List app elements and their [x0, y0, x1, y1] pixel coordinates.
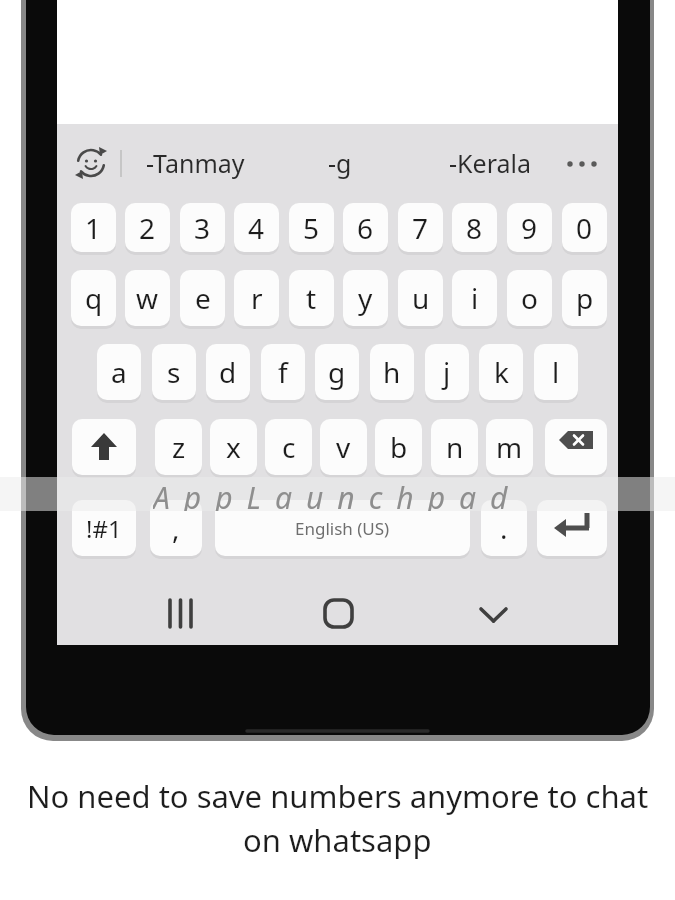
staticText: t	[306, 279, 317, 317]
staticText: on whatsapp	[243, 819, 432, 861]
button[interactable]: r	[234, 270, 279, 326]
staticText: p	[576, 279, 594, 317]
staticText: d	[219, 353, 237, 391]
staticText: i	[471, 279, 479, 317]
staticText: o	[521, 279, 538, 317]
staticText: !#1	[86, 512, 122, 545]
staticText: 8	[466, 209, 483, 247]
staticText: 6	[357, 209, 374, 247]
button[interactable]	[545, 419, 607, 475]
staticText: No need to save numbers anymore to chat	[27, 775, 649, 817]
staticText: m	[496, 428, 523, 466]
button[interactable]: English (US)	[215, 500, 470, 556]
button[interactable]: 9	[507, 203, 552, 252]
button[interactable]: 5	[289, 203, 334, 252]
button[interactable]: n	[431, 419, 478, 475]
staticText: r	[251, 279, 263, 317]
button[interactable]: 1	[71, 203, 116, 252]
button[interactable]: y	[343, 270, 388, 326]
staticText: a	[111, 353, 127, 391]
staticText: x	[226, 428, 241, 466]
staticText: -Tanmay	[146, 146, 245, 180]
button[interactable]: !#1	[72, 500, 136, 556]
staticText: 4	[248, 209, 265, 247]
staticText: AppLaunchpad	[153, 477, 522, 511]
staticText: l	[552, 353, 560, 391]
button[interactable]: 8	[452, 203, 497, 252]
button[interactable]: ,	[150, 500, 202, 556]
button[interactable]: l	[534, 344, 578, 400]
staticText: 2	[139, 209, 156, 247]
button[interactable]: p	[562, 270, 607, 326]
button[interactable]: 0	[562, 203, 607, 252]
staticText: u	[412, 279, 430, 317]
button[interactable]: w	[125, 270, 170, 326]
staticText: w	[136, 279, 159, 317]
staticText: c	[282, 428, 296, 466]
button[interactable]: h	[370, 344, 414, 400]
button[interactable]: s	[152, 344, 196, 400]
button[interactable]: q	[71, 270, 116, 326]
staticText: z	[172, 428, 186, 466]
staticText: 3	[194, 209, 211, 247]
staticText: 9	[521, 209, 538, 247]
button[interactable]: g	[315, 344, 359, 400]
staticText: 0	[576, 209, 593, 247]
button[interactable]: v	[320, 419, 367, 475]
staticText: b	[390, 428, 408, 466]
staticText: j	[443, 353, 451, 391]
button[interactable]: 7	[398, 203, 443, 252]
staticText: 7	[412, 209, 429, 247]
button[interactable]: u	[398, 270, 443, 326]
staticText: y	[358, 279, 373, 317]
button[interactable]: b	[375, 419, 422, 475]
button[interactable]: 4	[234, 203, 279, 252]
button[interactable]: 2	[125, 203, 170, 252]
staticText: English (US)	[295, 517, 390, 540]
button[interactable]: j	[425, 344, 469, 400]
button[interactable]: x	[210, 419, 257, 475]
staticText: n	[446, 428, 464, 466]
button[interactable]: d	[206, 344, 250, 400]
staticText: v	[336, 428, 351, 466]
button[interactable]: t	[289, 270, 334, 326]
staticText: q	[85, 279, 103, 317]
button[interactable]: e	[180, 270, 225, 326]
button[interactable]: m	[486, 419, 533, 475]
button[interactable]: o	[507, 270, 552, 326]
staticText: k	[494, 353, 509, 391]
button[interactable]: z	[155, 419, 202, 475]
staticText: h	[383, 353, 401, 391]
button[interactable]	[72, 419, 136, 475]
staticText: f	[278, 353, 288, 391]
staticText: 5	[303, 209, 320, 247]
staticText: 1	[85, 209, 102, 247]
button[interactable]: 3	[180, 203, 225, 252]
staticText: g	[328, 353, 346, 391]
staticText: .	[500, 509, 508, 547]
button[interactable]: i	[452, 270, 497, 326]
button[interactable]: c	[265, 419, 312, 475]
staticText: -Kerala	[449, 146, 531, 180]
staticText: ,	[172, 509, 180, 547]
button[interactable]: f	[261, 344, 305, 400]
button[interactable]	[537, 500, 607, 556]
button[interactable]: .	[481, 500, 527, 556]
staticText: -g	[328, 146, 352, 180]
button[interactable]: k	[479, 344, 523, 400]
button[interactable]: 6	[343, 203, 388, 252]
button[interactable]: a	[97, 344, 141, 400]
staticText: e	[195, 279, 211, 317]
staticText: s	[167, 353, 181, 391]
